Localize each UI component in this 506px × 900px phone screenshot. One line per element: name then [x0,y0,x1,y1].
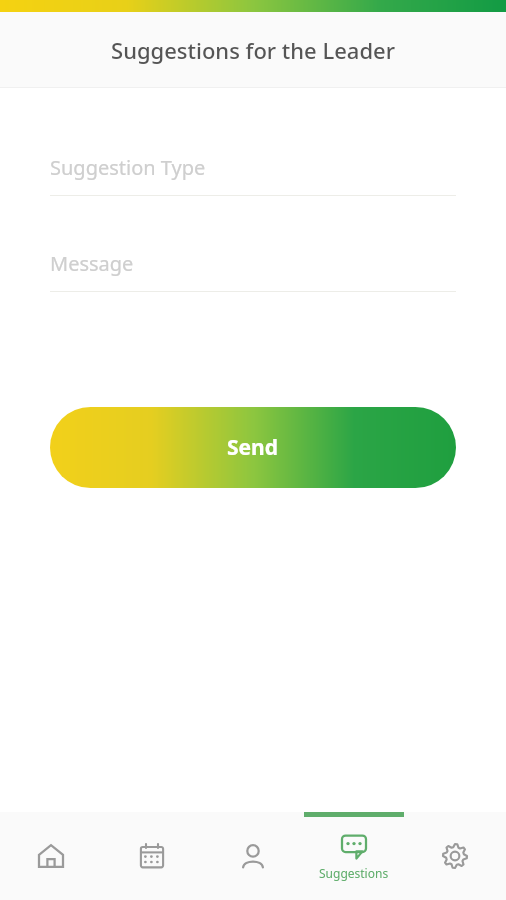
button[interactable]: Profile [203,812,303,900]
button[interactable]: Suggestions [304,812,404,900]
button[interactable]: Settings [405,812,505,900]
staticText: Suggestions [319,865,389,881]
staticText: Suggestions for the Leader [111,35,395,65]
button[interactable]: Send [50,407,456,488]
button[interactable]: Calendar [102,812,202,900]
button[interactable]: Suggestion Type [50,148,456,196]
staticText: Message [50,250,134,277]
staticText: Suggestion Type [50,154,206,181]
button[interactable]: Home [1,812,101,900]
button[interactable]: Message [50,244,456,292]
staticText: Send [227,433,279,462]
